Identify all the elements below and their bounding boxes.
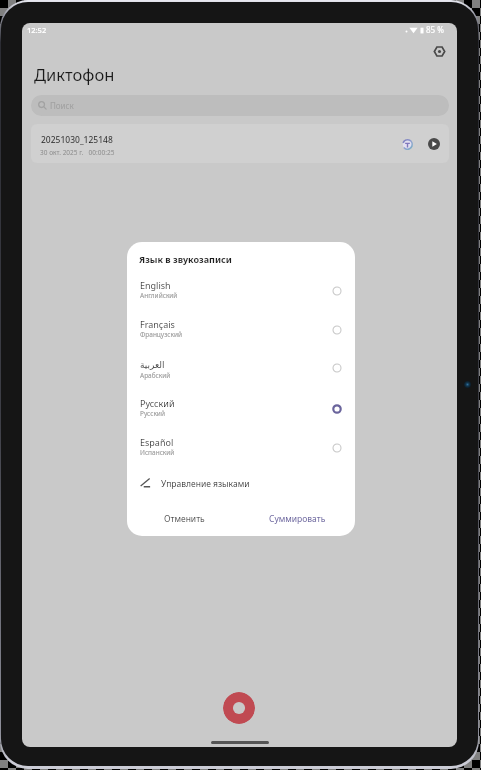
button[interactable]: Отменить xyxy=(149,509,219,529)
staticText: Суммировать xyxy=(269,513,326,525)
button[interactable]: Record xyxy=(223,692,255,724)
staticText: Язык в звукозаписи xyxy=(139,253,232,265)
staticText: Управление языками xyxy=(161,478,250,490)
staticText: 20251030_125148 xyxy=(41,134,113,146)
staticText: Диктофон xyxy=(34,63,115,85)
button[interactable]: Управление языками xyxy=(127,472,355,494)
staticText: Français xyxy=(140,318,175,330)
staticText: Поиск xyxy=(50,100,74,111)
button[interactable]: Русский xyxy=(127,389,355,422)
button[interactable]: Суммировать xyxy=(255,509,339,529)
staticText: Отменить xyxy=(164,513,205,525)
button[interactable]: 20251030_125148 xyxy=(31,124,449,163)
staticText: Русский xyxy=(140,409,165,418)
staticText: 30 окт. 2025 г. 00:00:25 xyxy=(40,148,115,157)
staticText: 85 % xyxy=(426,24,444,35)
button[interactable]: Español xyxy=(127,428,355,461)
staticText: Испанский xyxy=(140,448,175,457)
button[interactable]: Settings xyxy=(429,41,450,62)
button[interactable]: Français xyxy=(127,310,355,343)
staticText: Английский xyxy=(140,291,178,300)
button[interactable]: Transcribe xyxy=(398,135,417,154)
staticText: 12:52 xyxy=(27,25,47,35)
staticText: English xyxy=(140,279,171,291)
staticText: العربية xyxy=(140,360,165,370)
button[interactable]: Play xyxy=(425,135,443,153)
staticText: Русский xyxy=(140,397,175,409)
staticText: Арабский xyxy=(140,371,171,380)
button[interactable]: English xyxy=(127,271,355,304)
staticText: Французский xyxy=(140,330,183,339)
button[interactable]: العربية xyxy=(127,348,355,381)
staticText: Español xyxy=(140,436,174,448)
